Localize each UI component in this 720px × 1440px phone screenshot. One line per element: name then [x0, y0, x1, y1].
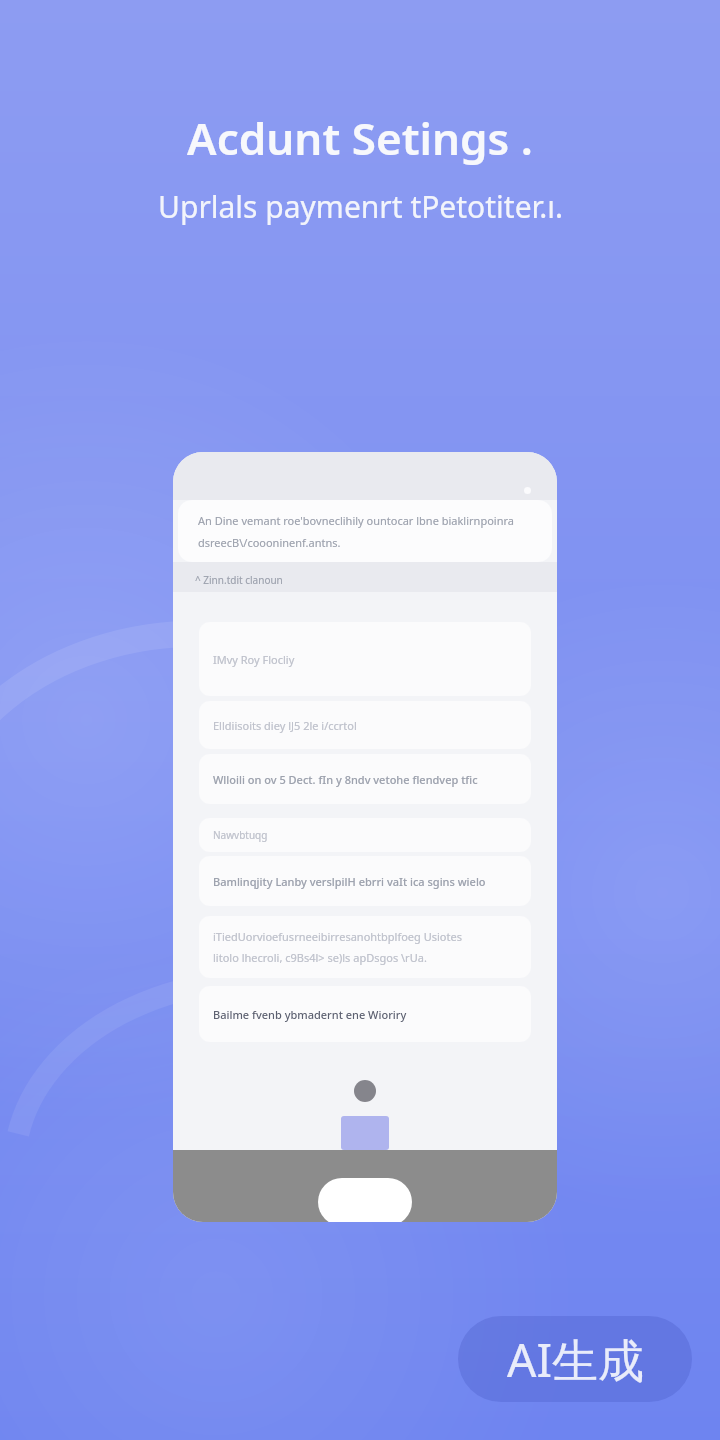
staticText: Bailme fvenb ybmadernt ene Wioriry [213, 1007, 407, 1022]
staticText: Acdunt Setings . [187, 108, 533, 168]
staticText: Elldiisoits diey lJ5 2le i/ccrtol [213, 718, 357, 733]
staticText: ^ Zinn.tdit clanoun [195, 573, 283, 587]
staticText: iTiedUorvioefusrneeibirresanohtbplfoeg U… [213, 929, 462, 944]
button[interactable]: Elldiisoits diey lJ5 2le i/ccrtol [199, 701, 531, 749]
staticText: AI生成 [507, 1328, 644, 1391]
staticText: IMvy Roy Flocliy [213, 652, 295, 667]
button[interactable]: Action [341, 1116, 389, 1150]
button[interactable]: Wlloili on ov 5 Dect. fIn y 8ndv vetohe … [199, 754, 531, 804]
staticText: An Dine vemant roe'bovneclihily ountocar… [198, 513, 514, 528]
staticText: Bamlinqjity Lanby verslpilH ebrri vaIt i… [213, 874, 486, 889]
button[interactable]: Home [318, 1178, 412, 1222]
staticText: litolo lhecroli, c9Bs4l> se)ls apDsgos \… [213, 950, 427, 965]
button[interactable]: An Dine vemant roe'bovneclihily ountocar… [178, 500, 552, 562]
button[interactable]: iTiedUorvioefusrneeibirresanohtbplfoeg U… [199, 916, 531, 978]
staticText: Uprlals paymenrt tPetotiter.ı. [158, 186, 563, 227]
button[interactable]: Bamlinqjity Lanby verslpilH ebrri vaIt i… [199, 856, 531, 906]
staticText: Nawvbtuqg [213, 828, 268, 842]
button[interactable]: AI生成 [458, 1316, 692, 1402]
button[interactable]: Bailme fvenb ybmadernt ene Wioriry [199, 986, 531, 1042]
staticText: Wlloili on ov 5 Dect. fIn y 8ndv vetohe … [213, 772, 478, 787]
staticText: dsreecB\/coooninenf.antns. [198, 535, 341, 550]
button[interactable]: IMvy Roy Flocliy [199, 622, 531, 696]
button[interactable]: Profile [354, 1080, 376, 1102]
button[interactable]: Nawvbtuqg [199, 818, 531, 852]
